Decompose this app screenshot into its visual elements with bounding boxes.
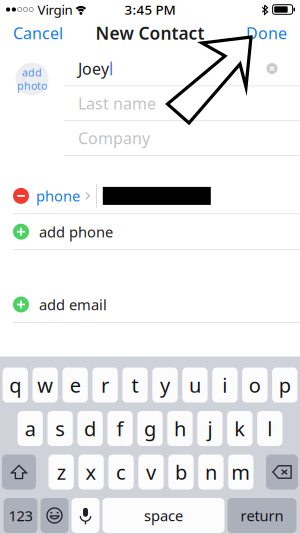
- button[interactable]: l: [257, 411, 282, 446]
- button[interactable]: g: [137, 411, 163, 446]
- button[interactable]: Add photo: [0, 51, 64, 103]
- staticText: n: [205, 459, 217, 485]
- staticText: m: [231, 459, 250, 485]
- button[interactable]: c: [108, 454, 134, 489]
- staticText: New Contact: [95, 21, 204, 44]
- button[interactable]: Cancel: [0, 20, 76, 45]
- button[interactable]: j: [197, 411, 222, 446]
- staticText: p: [279, 372, 291, 398]
- button[interactable]: v: [138, 454, 164, 489]
- button[interactable]: z: [48, 454, 74, 489]
- staticText: Done: [246, 22, 287, 44]
- staticText: a: [25, 415, 36, 442]
- staticText: v: [146, 459, 156, 485]
- staticText: s: [55, 415, 65, 442]
- button[interactable]: k: [227, 411, 252, 446]
- staticText: add phone: [39, 222, 113, 241]
- staticText: l: [267, 415, 272, 442]
- button[interactable]: w: [32, 367, 58, 402]
- button[interactable]: add email: [0, 287, 300, 323]
- staticText: w: [37, 372, 53, 398]
- button[interactable]: h: [167, 411, 193, 446]
- button[interactable]: add phone: [0, 214, 300, 250]
- staticText: o: [249, 372, 261, 398]
- staticText: Joey: [78, 58, 109, 79]
- staticText: i: [222, 372, 227, 398]
- staticText: Company: [78, 127, 150, 149]
- staticText: g: [144, 415, 156, 442]
- staticText: b: [175, 459, 187, 485]
- button[interactable]: p: [272, 367, 297, 402]
- staticText: f: [116, 415, 123, 442]
- button[interactable]: d: [77, 411, 103, 446]
- staticText: x: [86, 459, 97, 485]
- button[interactable]: o: [242, 367, 267, 402]
- staticText: Cancel: [13, 22, 63, 44]
- staticText: q: [9, 372, 21, 398]
- button[interactable]: Clear text: [260, 56, 284, 80]
- staticText: h: [174, 415, 186, 442]
- button[interactable]: i: [212, 367, 237, 402]
- button[interactable]: a: [17, 411, 43, 446]
- staticText: j: [207, 415, 212, 442]
- button[interactable]: space: [102, 498, 224, 533]
- staticText: return: [240, 506, 283, 525]
- button[interactable]: Delete: [266, 454, 298, 489]
- button[interactable]: x: [78, 454, 104, 489]
- staticText: photo: [17, 78, 47, 93]
- button[interactable]: b: [168, 454, 194, 489]
- button[interactable]: Done: [233, 20, 300, 45]
- button[interactable]: t: [122, 367, 148, 402]
- staticText: k: [234, 415, 245, 442]
- staticText: e: [70, 372, 81, 398]
- staticText: c: [116, 459, 126, 485]
- button[interactable]: u: [182, 367, 208, 402]
- staticText: r: [101, 372, 109, 398]
- button[interactable]: f: [107, 411, 133, 446]
- button[interactable]: m: [228, 454, 253, 489]
- button[interactable]: Dictation: [71, 498, 99, 533]
- button[interactable]: y: [152, 367, 178, 402]
- staticText: y: [160, 372, 170, 398]
- staticText: Virgin: [37, 1, 72, 18]
- button[interactable]: Emoji: [40, 498, 68, 533]
- staticText: t: [131, 372, 138, 398]
- staticText: Last name: [78, 93, 156, 114]
- button[interactable]: return: [227, 498, 296, 533]
- button[interactable]: phone: [0, 178, 300, 214]
- button[interactable]: s: [47, 411, 73, 446]
- staticText: z: [57, 459, 66, 485]
- button[interactable]: n: [198, 454, 223, 489]
- staticText: d: [84, 415, 96, 442]
- staticText: add: [22, 65, 42, 79]
- button[interactable]: q: [3, 367, 28, 402]
- staticText: space: [144, 506, 183, 525]
- button[interactable]: Shift: [2, 454, 36, 489]
- staticText: u: [189, 372, 201, 398]
- staticText: 3:45 PM: [124, 1, 175, 18]
- staticText: phone: [36, 186, 80, 206]
- button[interactable]: 123: [3, 498, 37, 533]
- button[interactable]: r: [92, 367, 118, 402]
- button[interactable]: e: [62, 367, 88, 402]
- staticText: 123: [8, 506, 32, 525]
- staticText: add email: [39, 295, 107, 314]
